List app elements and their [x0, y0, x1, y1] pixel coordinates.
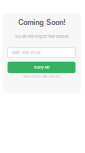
- staticText: Coming Soon!: [18, 18, 65, 27]
- staticText: Notify Me: [33, 65, 49, 70]
- staticText: We are working for new website: [15, 34, 69, 39]
- button[interactable]: Notify Me: [7, 62, 75, 73]
- staticText: Enter Your Email: [11, 50, 40, 55]
- staticText: We promise to never spam you.: [23, 75, 60, 78]
